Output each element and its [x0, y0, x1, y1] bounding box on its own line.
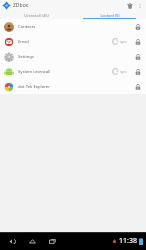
staticText: dot Tek Explorer — [18, 84, 50, 90]
button[interactable]: Lock Contacts — [133, 22, 142, 31]
button[interactable]: Lock Settings — [133, 52, 142, 61]
button[interactable]: More options — [135, 1, 144, 10]
button[interactable]: Locked (5) — [73, 11, 146, 19]
button[interactable]: Email — [0, 34, 146, 49]
button[interactable]: Delete — [124, 0, 135, 11]
staticText: 11:38 — [119, 236, 137, 246]
button[interactable]: Contacts — [0, 19, 146, 34]
staticText: Contacts — [18, 24, 36, 30]
button[interactable]: Home — [24, 233, 40, 249]
button[interactable]: Uninstall (45) — [0, 11, 73, 19]
button[interactable]: Lock System uninstall — [133, 67, 142, 76]
button[interactable]: dot Tek Explorer — [0, 79, 146, 94]
button[interactable]: Lock Email — [133, 37, 142, 46]
button[interactable]: Recent apps — [44, 233, 60, 249]
staticText: sync — [120, 39, 128, 44]
staticText: Locked (5) — [100, 13, 120, 18]
staticText: System uninstall — [18, 69, 51, 75]
button[interactable]: Back — [4, 233, 20, 249]
staticText: Settings — [18, 54, 34, 60]
staticText: ZDbox — [13, 2, 29, 9]
button[interactable]: System uninstall — [0, 64, 146, 79]
staticText: Email — [18, 39, 29, 45]
button[interactable]: Lock dot Tek Explorer — [133, 82, 142, 91]
staticText: sync — [120, 69, 128, 74]
button[interactable]: Settings — [0, 49, 146, 64]
staticText: Uninstall (45) — [24, 13, 49, 18]
